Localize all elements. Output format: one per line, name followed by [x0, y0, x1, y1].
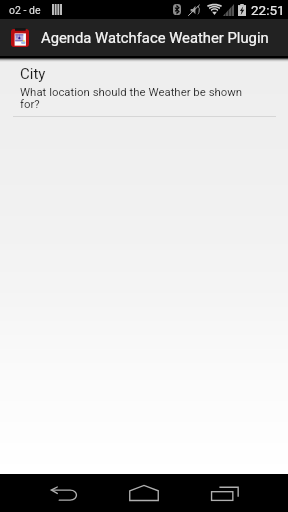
- staticText: Agenda Watchface Weather Plugin: [41, 29, 269, 46]
- button[interactable]: Recent apps: [201, 474, 249, 512]
- staticText: What location should the Weather be show…: [20, 85, 246, 111]
- staticText: City: [20, 65, 46, 83]
- button[interactable]: Back: [40, 474, 88, 512]
- staticText: o2 - de: [9, 4, 41, 16]
- staticText: 22:51: [251, 2, 285, 18]
- button[interactable]: Home: [120, 474, 168, 512]
